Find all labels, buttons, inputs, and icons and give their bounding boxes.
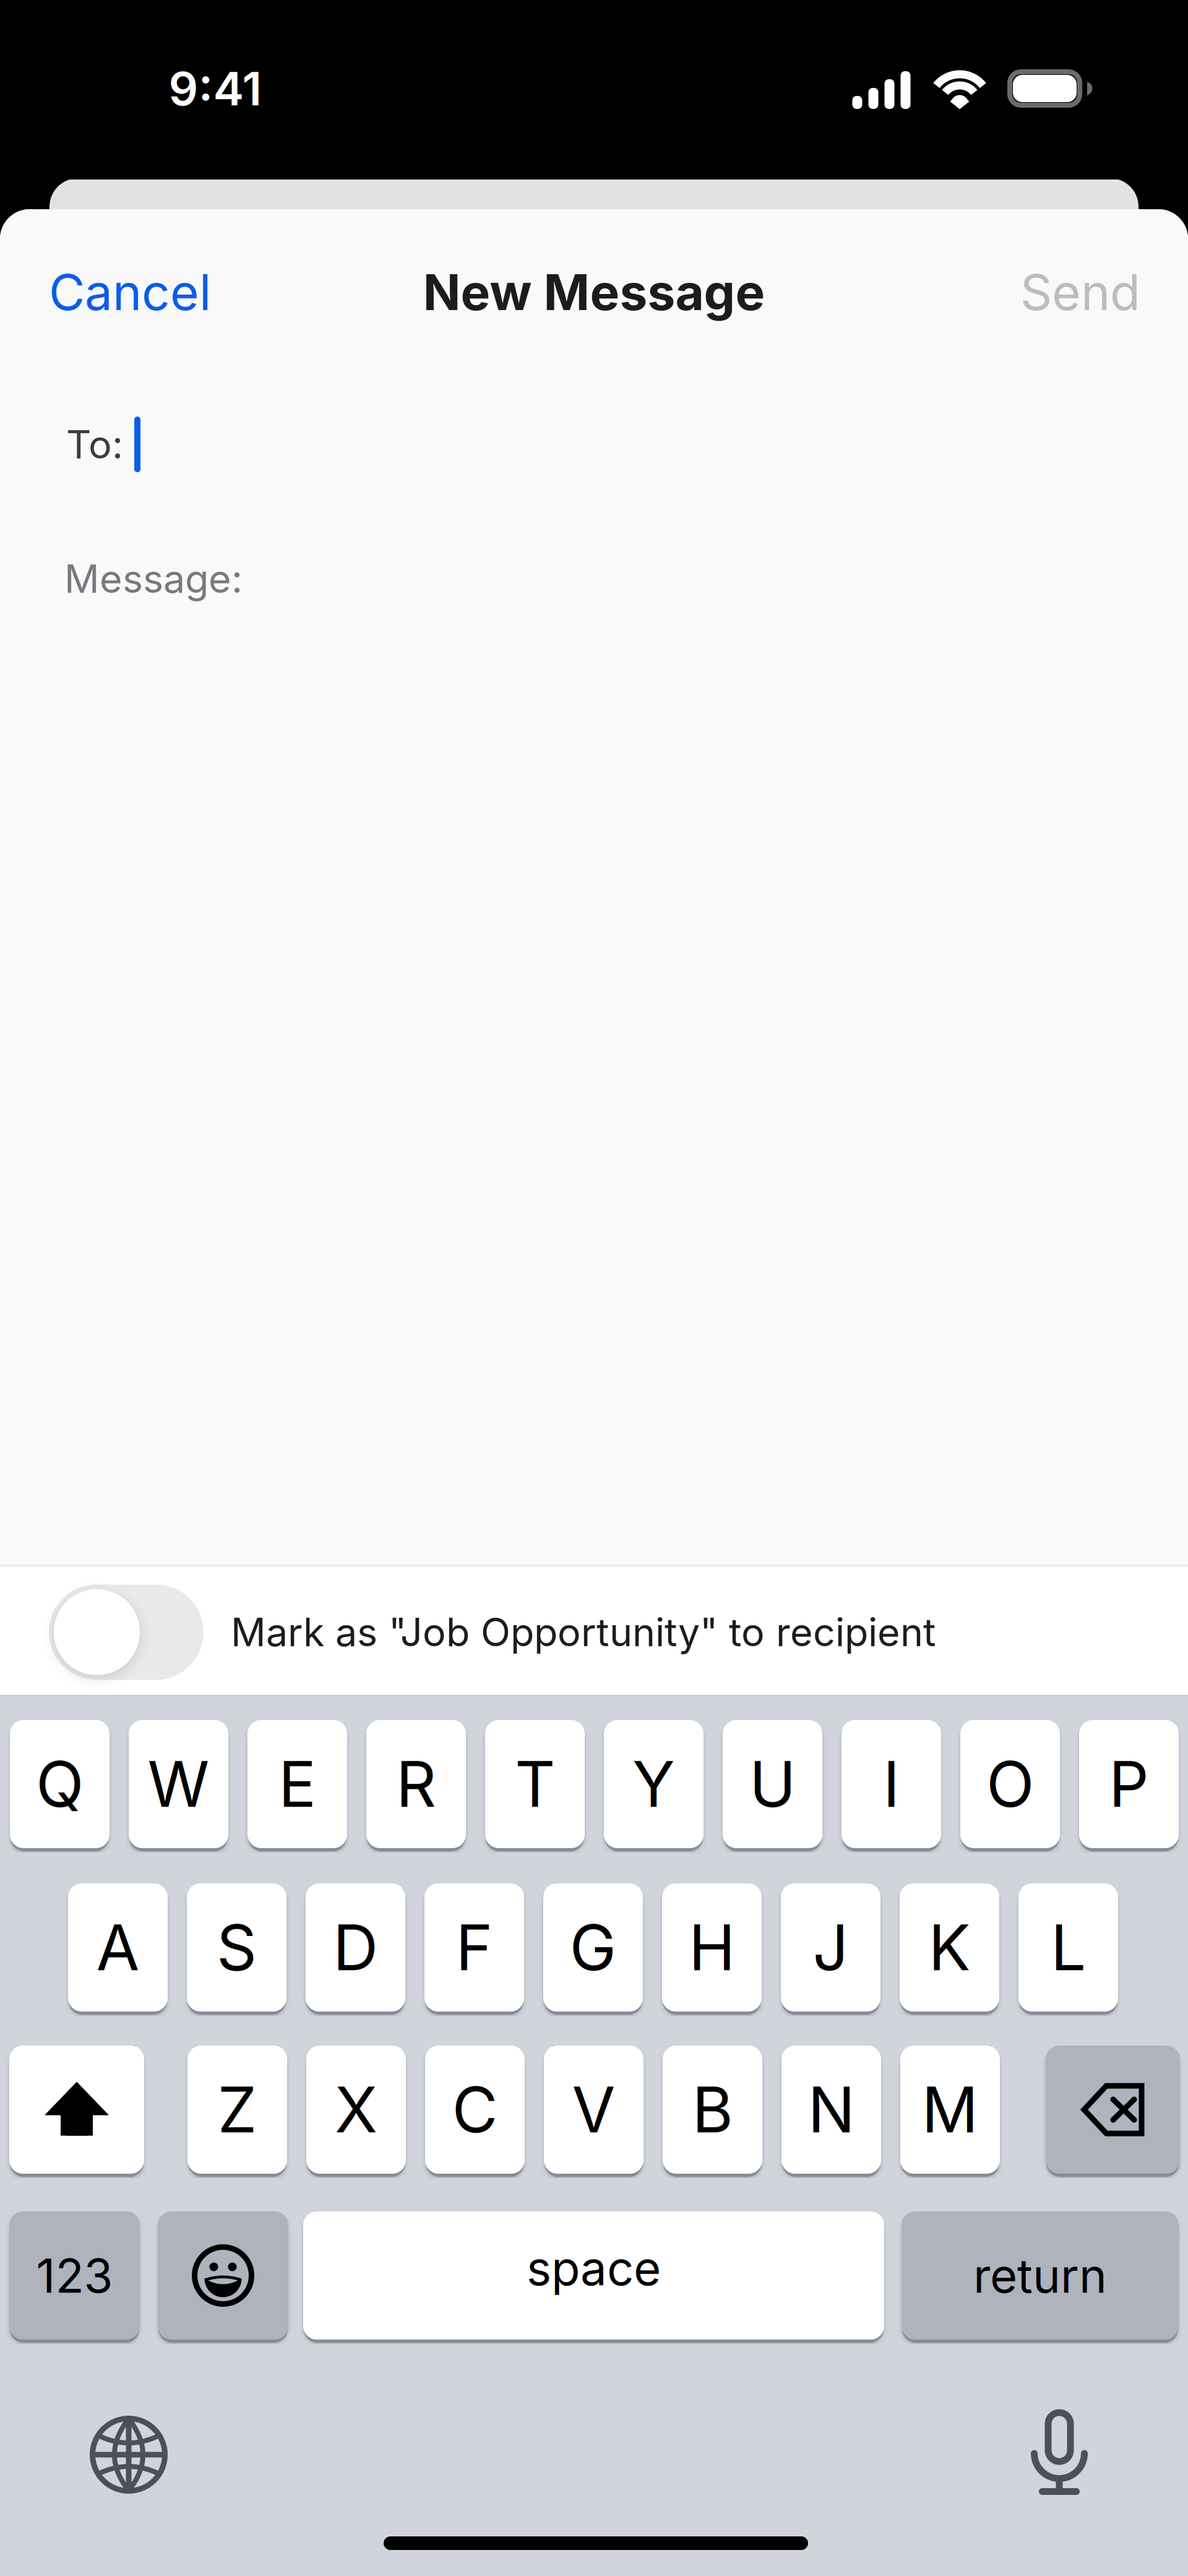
button[interactable]: C	[425, 2046, 525, 2174]
staticText: G	[570, 1910, 617, 1985]
staticText: S	[217, 1910, 257, 1985]
button[interactable]: F	[424, 1883, 524, 2012]
button[interactable]: E	[247, 1720, 347, 1848]
button[interactable]: Y	[604, 1720, 704, 1848]
button[interactable]: S	[187, 1883, 286, 2012]
button[interactable]: Q	[10, 1720, 110, 1848]
staticText: J	[813, 1910, 849, 1985]
staticText: Q	[36, 1746, 84, 1822]
staticText: H	[689, 1910, 735, 1985]
staticText: 123	[36, 2247, 113, 2304]
button[interactable]: H	[662, 1883, 762, 2012]
staticText: E	[278, 1746, 316, 1822]
staticText: C	[452, 2072, 498, 2148]
button[interactable]: G	[543, 1883, 643, 2012]
button[interactable]: Z	[187, 2046, 287, 2174]
staticText: B	[692, 2072, 733, 2148]
staticText: M	[922, 2072, 979, 2148]
staticText: K	[928, 1910, 971, 1985]
button[interactable]: Send	[996, 209, 1188, 375]
staticText: Send	[1020, 262, 1140, 322]
staticText: O	[986, 1746, 1034, 1822]
button[interactable]: M	[900, 2046, 1000, 2174]
staticText: Message:	[64, 555, 243, 602]
staticText: Y	[632, 1746, 675, 1822]
button[interactable]: N	[781, 2046, 881, 2174]
button[interactable]: Mark as "Job Opportunity" to recipient	[0, 1567, 1188, 1698]
button[interactable]: B	[663, 2046, 762, 2174]
staticText: A	[96, 1910, 140, 1985]
button[interactable]: return	[902, 2211, 1179, 2340]
button[interactable]: X	[306, 2046, 406, 2174]
staticText: T	[515, 1746, 555, 1822]
button[interactable]: V	[544, 2046, 643, 2174]
button[interactable]: A	[68, 1883, 168, 2012]
staticText: F	[456, 1910, 493, 1985]
button[interactable]: I	[841, 1720, 941, 1848]
button[interactable]: J	[781, 1883, 880, 2012]
button[interactable]: 123	[9, 2211, 140, 2340]
button[interactable]: O	[960, 1720, 1060, 1848]
staticText: P	[1109, 1746, 1149, 1822]
staticText: Cancel	[49, 262, 211, 322]
staticText: W	[148, 1746, 209, 1822]
button[interactable]: Next keyboard	[90, 2416, 168, 2494]
staticText: V	[572, 2072, 615, 2148]
button[interactable]: P	[1079, 1720, 1179, 1848]
button[interactable]: space	[303, 2211, 884, 2340]
button[interactable]: L	[1018, 1883, 1118, 2012]
button[interactable]: W	[129, 1720, 228, 1848]
button[interactable]: Shift	[9, 2046, 144, 2174]
staticText: U	[749, 1746, 796, 1822]
staticText: Z	[217, 2072, 257, 2148]
staticText: To:	[66, 421, 123, 468]
staticText: D	[333, 1910, 378, 1985]
button[interactable]: Delete	[1046, 2046, 1180, 2174]
button[interactable]: U	[723, 1720, 822, 1848]
button[interactable]: D	[306, 1883, 405, 2012]
staticText: 9:41	[169, 61, 262, 116]
button[interactable]: Dictate	[1031, 2409, 1088, 2495]
staticText: L	[1051, 1910, 1086, 1985]
button[interactable]: T	[485, 1720, 585, 1848]
staticText: X	[335, 2072, 377, 2148]
button[interactable]: Emoji	[158, 2211, 288, 2340]
staticText: N	[808, 2072, 855, 2148]
button[interactable]: K	[900, 1883, 999, 2012]
staticText: Mark as "Job Opportunity" to recipient	[231, 1609, 936, 1656]
staticText: R	[396, 1746, 436, 1822]
button[interactable]: R	[366, 1720, 466, 1848]
button[interactable]: Cancel	[0, 209, 236, 375]
staticText: I	[883, 1746, 900, 1822]
staticText: space	[527, 2240, 661, 2297]
staticText: return	[973, 2247, 1107, 2304]
staticText: New Message	[423, 262, 765, 322]
